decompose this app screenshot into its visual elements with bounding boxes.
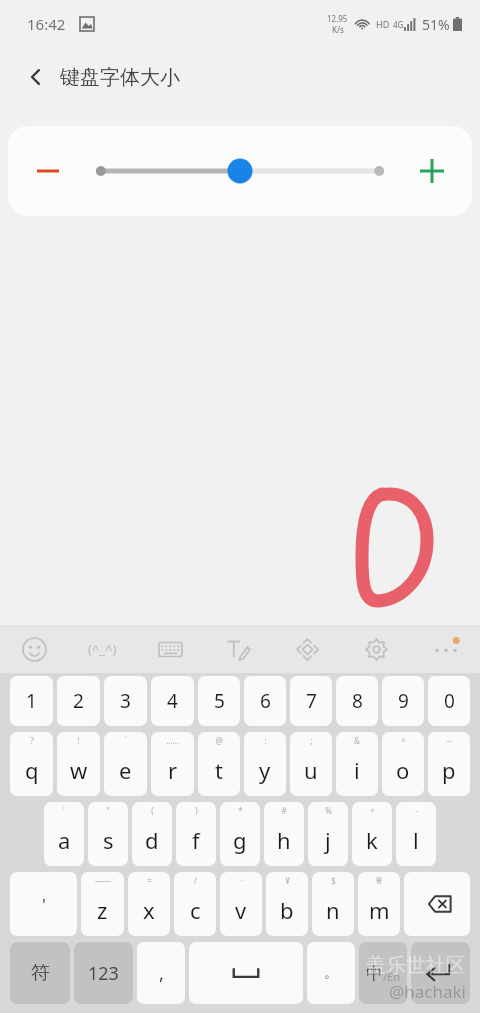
staticText: s xyxy=(103,825,114,855)
button[interactable]: · xyxy=(220,872,262,936)
button[interactable]: , xyxy=(137,942,185,1004)
button[interactable]: @ xyxy=(198,732,240,796)
button[interactable]: Decrease xyxy=(26,149,70,193)
button[interactable]: 中 xyxy=(359,942,407,1004)
button[interactable]: ! xyxy=(57,732,100,796)
button[interactable]: 8 xyxy=(336,676,378,726)
staticText: u xyxy=(304,755,318,785)
staticText: 6 xyxy=(260,688,271,714)
staticText: m xyxy=(369,895,390,925)
staticText: & xyxy=(354,735,360,746)
staticText: @ xyxy=(215,735,223,746)
button[interactable]: 3 xyxy=(104,676,147,726)
button[interactable]: Move xyxy=(273,625,342,673)
button[interactable]: ' xyxy=(10,872,77,936)
button[interactable]: ^ xyxy=(382,732,424,796)
staticText: 16:42 xyxy=(27,14,66,34)
staticText: q xyxy=(25,755,39,785)
button[interactable]: Back xyxy=(16,57,56,97)
staticText: z xyxy=(97,895,108,925)
button[interactable]: …… xyxy=(151,732,194,796)
button[interactable]: 6 xyxy=(244,676,286,726)
staticText: l xyxy=(413,825,419,855)
staticText: $ xyxy=(331,875,336,886)
button[interactable]: % xyxy=(308,802,348,866)
staticText: 12.95 xyxy=(327,13,348,24)
staticText: a xyxy=(58,825,71,855)
button[interactable]: —— xyxy=(81,872,124,936)
button[interactable]: ` xyxy=(104,732,147,796)
staticText: ? xyxy=(30,735,34,746)
button[interactable]: 0 xyxy=(428,676,470,726)
staticText: o xyxy=(396,755,410,785)
staticText: k xyxy=(366,825,378,855)
button[interactable]: 5 xyxy=(198,676,240,726)
button[interactable]: Handwriting xyxy=(204,625,273,673)
staticText: ) xyxy=(195,805,198,816)
staticText: = xyxy=(147,875,152,886)
button[interactable]: 9 xyxy=(382,676,424,726)
button[interactable]: + xyxy=(352,802,392,866)
staticText: 中 xyxy=(366,963,383,984)
button[interactable]: 1 xyxy=(10,676,53,726)
button[interactable]: (^_^) xyxy=(68,625,136,673)
button[interactable]: = xyxy=(128,872,170,936)
staticText: n xyxy=(326,895,340,925)
button[interactable]: 。 xyxy=(307,942,355,1004)
button[interactable]: 7 xyxy=(290,676,332,726)
button[interactable]: ; xyxy=(290,732,332,796)
staticText: j xyxy=(325,825,331,855)
staticText: " xyxy=(106,805,110,816)
button[interactable]: / xyxy=(174,872,216,936)
button[interactable]: ' xyxy=(44,802,84,866)
button[interactable]: Emoji xyxy=(0,625,68,673)
button[interactable] xyxy=(8,151,472,191)
button[interactable]: 符 xyxy=(10,942,70,1004)
button[interactable]: -- xyxy=(428,732,470,796)
staticText: 4G xyxy=(393,19,404,30)
button[interactable]: # xyxy=(264,802,304,866)
button[interactable]: * xyxy=(220,802,260,866)
staticText: ! xyxy=(77,735,80,746)
button[interactable]: ) xyxy=(176,802,216,866)
staticText: /En xyxy=(383,969,401,984)
button[interactable]: Keyboard layout xyxy=(136,625,204,673)
button[interactable]: 123 xyxy=(74,942,133,1004)
button[interactable]: ₩ xyxy=(358,872,400,936)
button[interactable]: 2 xyxy=(57,676,100,726)
staticText: 5 xyxy=(214,688,225,714)
button[interactable]: More xyxy=(411,625,480,673)
staticText: d xyxy=(145,825,159,855)
staticText: (^_^) xyxy=(88,640,117,658)
button[interactable]: Increase xyxy=(410,149,454,193)
button[interactable]: 4 xyxy=(151,676,194,726)
staticText: 7 xyxy=(306,688,317,714)
staticText: t xyxy=(215,755,223,785)
staticText: r xyxy=(168,755,178,785)
button[interactable]: Space xyxy=(189,942,303,1004)
button[interactable]: Settings xyxy=(342,625,411,673)
button[interactable]: ? xyxy=(10,732,53,796)
button[interactable]: Enter xyxy=(411,942,470,1004)
staticText: 8 xyxy=(352,688,363,714)
staticText: 123 xyxy=(88,961,119,986)
staticText: : xyxy=(264,735,267,746)
staticText: K/s xyxy=(332,24,344,35)
staticText: -- xyxy=(446,735,452,746)
staticText: ( xyxy=(151,805,154,816)
button[interactable]: ¥ xyxy=(266,872,308,936)
button[interactable]: : xyxy=(244,732,286,796)
button[interactable]: ( xyxy=(132,802,172,866)
staticText: i xyxy=(354,755,360,785)
staticText: 4 xyxy=(167,688,178,714)
staticText: , xyxy=(159,961,164,986)
button[interactable]: $ xyxy=(312,872,354,936)
button[interactable]: - xyxy=(396,802,436,866)
button[interactable]: & xyxy=(336,732,378,796)
staticText: 盖乐世社区 xyxy=(366,953,466,978)
button[interactable]: Backspace xyxy=(404,872,470,936)
staticText: f xyxy=(192,825,200,855)
staticText: @hachaki xyxy=(389,980,466,1003)
button[interactable]: " xyxy=(88,802,128,866)
staticText: …… xyxy=(166,735,179,746)
